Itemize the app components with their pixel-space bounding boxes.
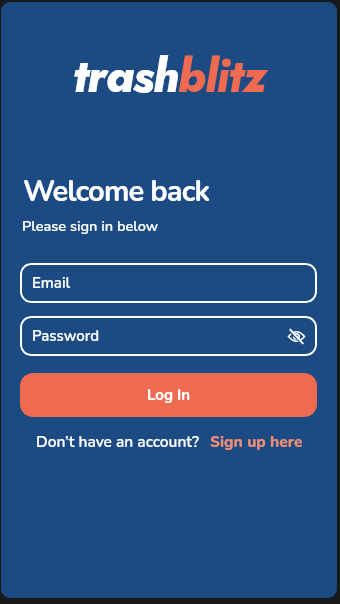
staticText: Don’t have an account? [36,431,200,452]
staticText: Welcome back [23,172,210,212]
button[interactable]: Sign up here [210,431,303,452]
button[interactable] [287,327,306,346]
staticText: Password [32,326,100,346]
staticText: Log In [147,385,191,405]
staticText: Please sign in below [22,216,158,236]
button[interactable]: Password [20,316,317,356]
button[interactable]: Email [20,263,317,303]
staticText: Email [32,273,71,293]
button[interactable]: Log In [20,373,317,417]
staticText: trashblitz [73,43,266,109]
